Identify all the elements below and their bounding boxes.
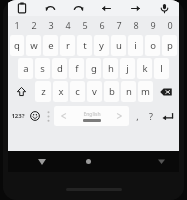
button[interactable]: 3 — [42, 16, 59, 34]
button[interactable]: b — [104, 81, 119, 102]
staticText: 0 — [167, 19, 173, 31]
button[interactable]: 9 — [144, 16, 161, 34]
button[interactable]: Recent apps — [149, 151, 173, 172]
staticText: i — [134, 39, 137, 52]
button[interactable]: Undo — [36, 0, 64, 16]
staticText: t — [83, 39, 87, 52]
button[interactable]: 2 — [25, 16, 42, 34]
staticText: m — [141, 85, 150, 98]
staticText: h — [108, 62, 114, 75]
button[interactable]: q — [10, 35, 24, 56]
button[interactable]: Move cursor right — [121, 0, 150, 16]
button[interactable]: f — [69, 58, 84, 79]
staticText: f — [75, 62, 79, 75]
button[interactable]: 4 — [59, 16, 76, 34]
staticText: x — [58, 85, 64, 98]
button[interactable]: n — [121, 81, 136, 102]
button[interactable]: Keyboard settings — [43, 103, 53, 129]
staticText: d — [57, 62, 63, 75]
staticText: English — [83, 111, 101, 118]
button[interactable]: , — [130, 103, 144, 129]
button[interactable]: c — [70, 81, 85, 102]
button[interactable]: z — [35, 81, 51, 102]
button[interactable]: t — [77, 35, 92, 56]
staticText: p — [167, 39, 173, 52]
staticText: c — [75, 85, 80, 98]
staticText: l — [160, 62, 163, 75]
staticText: o — [150, 39, 156, 52]
staticText: 6 — [99, 19, 105, 31]
staticText: a — [23, 62, 29, 75]
staticText: b — [109, 85, 115, 98]
staticText: z — [41, 85, 46, 98]
staticText: 9 — [150, 19, 156, 31]
staticText: u — [116, 39, 122, 52]
button[interactable]: Space — [54, 106, 129, 126]
staticText: 1 — [14, 19, 20, 31]
button[interactable]: Enter — [158, 103, 178, 129]
button[interactable]: Backspace — [154, 80, 178, 103]
button[interactable]: Clipboard — [8, 0, 36, 16]
button[interactable]: u — [111, 35, 126, 56]
button[interactable]: Back — [29, 151, 54, 172]
staticText: j — [126, 62, 129, 75]
button[interactable]: h — [103, 58, 118, 79]
button[interactable]: s — [35, 58, 50, 79]
staticText: g — [91, 62, 97, 75]
button[interactable]: e — [43, 35, 58, 56]
button[interactable]: l — [154, 58, 169, 79]
staticText: n — [126, 85, 132, 98]
button[interactable]: 5 — [76, 16, 93, 34]
button[interactable]: i — [128, 35, 143, 56]
button[interactable]: o — [145, 35, 160, 56]
button[interactable]: 1 — [9, 16, 25, 34]
staticText: 5 — [82, 19, 88, 31]
staticText: 123? — [11, 112, 25, 120]
button[interactable]: j — [120, 58, 135, 79]
button[interactable]: y — [94, 35, 109, 56]
button[interactable]: Home — [76, 151, 100, 172]
button[interactable]: k — [137, 58, 152, 79]
staticText: q — [14, 39, 20, 52]
staticText: 2 — [31, 19, 37, 31]
staticText: r — [66, 39, 70, 52]
staticText: s — [40, 62, 45, 75]
button[interactable]: g — [86, 58, 101, 79]
button[interactable]: Emoji — [27, 103, 43, 129]
staticText: v — [92, 85, 97, 98]
button[interactable]: p — [162, 35, 177, 56]
button[interactable]: 8 — [127, 16, 144, 34]
button[interactable]: d — [52, 58, 67, 79]
button[interactable]: 0 — [161, 16, 178, 34]
button[interactable]: Redo — [64, 0, 92, 16]
staticText: k — [142, 62, 148, 75]
button[interactable]: 123? — [9, 103, 27, 129]
button[interactable]: Move cursor left — [92, 0, 121, 16]
staticText: 7 — [116, 19, 122, 31]
button[interactable]: Voice input — [150, 0, 179, 16]
button[interactable]: Shift — [9, 80, 34, 103]
button[interactable]: m — [138, 81, 153, 102]
staticText: w — [30, 39, 38, 52]
button[interactable]: r — [60, 35, 75, 56]
staticText: y — [99, 39, 104, 52]
staticText: , — [136, 110, 139, 122]
button[interactable]: 6 — [93, 16, 110, 34]
staticText: ? — [149, 110, 153, 122]
staticText: 8 — [133, 19, 139, 31]
button[interactable]: v — [87, 81, 102, 102]
button[interactable]: w — [26, 35, 41, 56]
button[interactable]: a — [18, 58, 33, 79]
staticText: 3 — [48, 19, 54, 31]
button[interactable]: 7 — [110, 16, 127, 34]
staticText: e — [48, 39, 54, 52]
button[interactable]: ? — [144, 103, 158, 129]
button[interactable]: x — [53, 81, 68, 102]
staticText: 4 — [65, 19, 71, 31]
